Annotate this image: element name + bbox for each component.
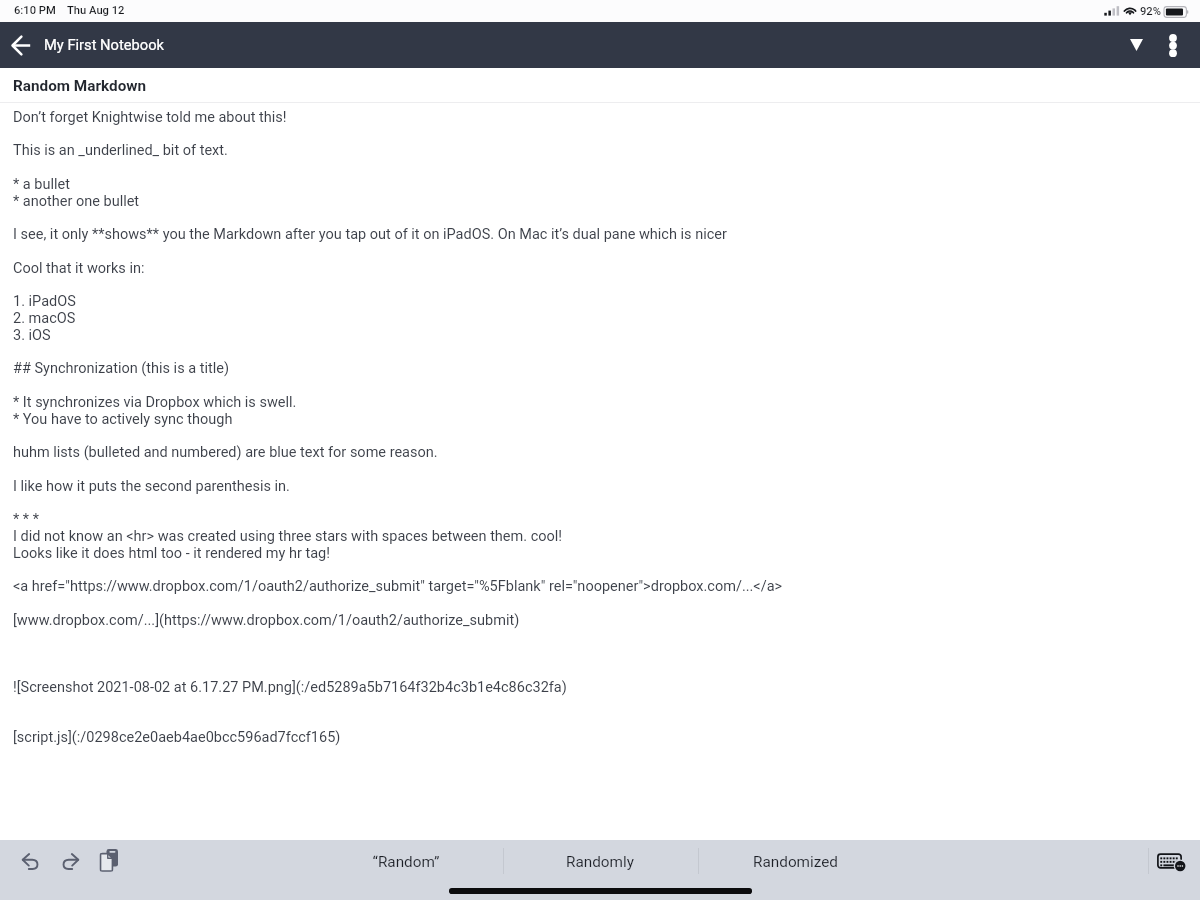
staticText: Random Markdown bbox=[13, 77, 147, 95]
staticText: 1. iPadOS bbox=[13, 293, 76, 310]
staticText: huhm lists (bulleted and numbered) are b… bbox=[13, 444, 438, 461]
staticText: ![Screenshot 2021-08-02 at 6.17.27 PM.pn… bbox=[13, 679, 567, 696]
staticText: This is an _underlined_ bit of text. bbox=[13, 142, 228, 159]
button[interactable]: Random Markdown bbox=[0, 68, 1200, 103]
staticText: 3. iOS bbox=[13, 327, 51, 344]
staticText: My First Notebook bbox=[44, 36, 165, 53]
staticText: * a bullet bbox=[13, 176, 70, 193]
button[interactable]: Randomized bbox=[699, 846, 891, 878]
staticText: Looks like it does html too - it rendere… bbox=[13, 545, 330, 562]
staticText: ## Synchronization (this is a title) bbox=[13, 360, 229, 377]
button[interactable]: Paste bbox=[93, 844, 125, 876]
staticText: Randomly bbox=[566, 853, 634, 871]
staticText: Don’t forget Knightwise told me about th… bbox=[13, 109, 287, 126]
staticText: 6:10 PM bbox=[14, 4, 56, 17]
button[interactable]: Redo bbox=[54, 845, 86, 877]
button[interactable]: Switch keyboard bbox=[1154, 846, 1188, 878]
staticText: * another one bullet bbox=[13, 193, 140, 210]
button[interactable]: Collapse toolbar bbox=[1114, 22, 1158, 68]
staticText: <a href="https://www.dropbox.com/1/oauth… bbox=[13, 578, 783, 595]
staticText: “Random” bbox=[372, 853, 440, 871]
button[interactable]: Back bbox=[0, 22, 42, 68]
staticText: 2. macOS bbox=[13, 310, 76, 327]
button[interactable]: Undo bbox=[14, 845, 46, 877]
staticText: * * * bbox=[13, 511, 39, 528]
staticText: I did not know an <hr> was created using… bbox=[13, 528, 563, 545]
staticText: [script.js](:/0298ce2e0aeb4ae0bcc596ad7f… bbox=[13, 729, 341, 746]
staticText: Randomized bbox=[753, 853, 838, 871]
staticText: * It synchronizes via Dropbox which is s… bbox=[13, 394, 297, 411]
button[interactable]: Randomly bbox=[504, 846, 696, 878]
staticText: I like how it puts the second parenthesi… bbox=[13, 478, 290, 495]
staticText: Cool that it works in: bbox=[13, 260, 145, 277]
staticText: Thu Aug 12 bbox=[67, 4, 125, 17]
staticText: [www.dropbox.com/...](https://www.dropbo… bbox=[13, 612, 520, 629]
button[interactable]: More options bbox=[1151, 22, 1195, 68]
staticText: I see, it only **shows** you the Markdow… bbox=[13, 226, 727, 243]
staticText: 92% bbox=[1140, 5, 1161, 18]
button[interactable]: “Random” bbox=[310, 846, 502, 878]
staticText: * You have to actively sync though bbox=[13, 411, 233, 428]
